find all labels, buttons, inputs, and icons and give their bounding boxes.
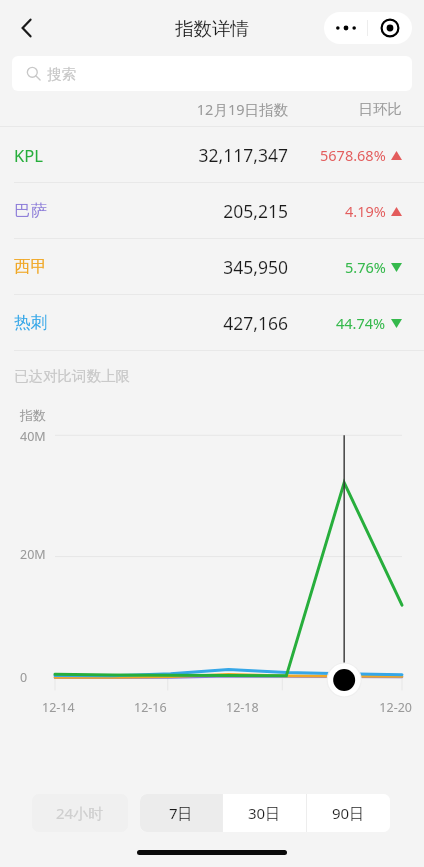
- button[interactable]: 搜索: [12, 56, 412, 91]
- staticText: 已达对比词数上限: [14, 367, 130, 385]
- staticText: 西甲: [14, 256, 47, 277]
- button[interactable]: More: [324, 12, 367, 44]
- staticText: 7日: [169, 803, 193, 823]
- staticText: 90日: [332, 803, 365, 823]
- staticText: 指数: [20, 407, 46, 423]
- button[interactable]: 7日: [140, 794, 222, 832]
- staticText: 12-18: [226, 699, 319, 716]
- staticText: 12月19日指数: [128, 99, 288, 119]
- staticText: 40M: [20, 428, 46, 445]
- staticText: 12-16: [134, 699, 226, 716]
- button[interactable]: 巴萨: [0, 183, 424, 238]
- staticText: 5.76%: [345, 257, 386, 277]
- staticText: 指数详情: [175, 17, 249, 40]
- staticText: 427,166: [128, 311, 288, 335]
- staticText: 日环比: [288, 100, 402, 118]
- staticText: 30日: [248, 803, 281, 823]
- staticText: 345,950: [128, 255, 288, 279]
- staticText: 44.74%: [336, 313, 386, 333]
- button[interactable]: 24小时: [32, 794, 128, 832]
- staticText: KPL: [14, 144, 43, 166]
- staticText: 热刺: [14, 312, 47, 333]
- button[interactable]: 西甲: [0, 239, 424, 294]
- staticText: 205,215: [128, 199, 288, 223]
- button[interactable]: 热刺: [0, 295, 424, 350]
- staticText: 32,117,347: [128, 143, 288, 167]
- button[interactable]: Target: [368, 12, 412, 44]
- button[interactable]: 90日: [307, 794, 390, 832]
- staticText: 搜索: [47, 65, 76, 83]
- staticText: 20M: [20, 546, 46, 563]
- staticText: 5678.68%: [320, 145, 386, 165]
- staticText: 12-14: [42, 699, 134, 716]
- staticText: 巴萨: [14, 200, 47, 221]
- button[interactable]: KPL: [0, 127, 424, 182]
- staticText: 0: [20, 669, 28, 686]
- staticText: 4.19%: [345, 201, 386, 221]
- staticText: 12-20: [319, 699, 412, 716]
- button[interactable]: 30日: [223, 794, 306, 832]
- button[interactable]: Back: [4, 5, 50, 51]
- staticText: 24小时: [56, 803, 104, 823]
